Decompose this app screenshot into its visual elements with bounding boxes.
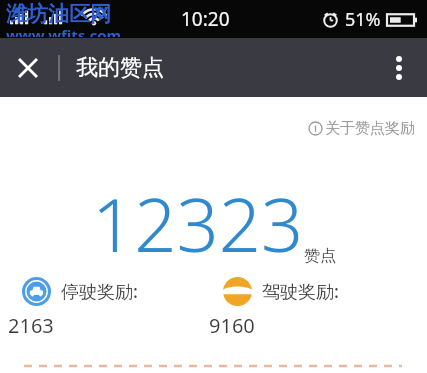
staticText: 12323 (92, 173, 304, 274)
button[interactable]: 更多选项 (371, 40, 427, 96)
staticText: 赞点 (304, 246, 336, 266)
button[interactable]: 关闭 (0, 40, 56, 96)
staticText: 关于赞点奖励 (325, 119, 415, 138)
staticText: www.wfits.com (6, 25, 122, 37)
staticText: 我的赞点 (76, 54, 164, 82)
staticText: 停驶奖励: (61, 279, 138, 304)
button[interactable]: 关于赞点奖励 (296, 115, 427, 142)
staticText: 10:20 (181, 6, 230, 32)
staticText: 2163 (8, 312, 54, 339)
staticText: 潍坊油区网 (6, 1, 111, 27)
staticText: 51% (345, 7, 381, 32)
staticText: 9160 (209, 312, 255, 339)
button[interactable]: 驾驶奖励: (213, 277, 427, 339)
staticText: 驾驶奖励: (262, 279, 339, 304)
button[interactable]: 停驶奖励: (0, 277, 213, 339)
